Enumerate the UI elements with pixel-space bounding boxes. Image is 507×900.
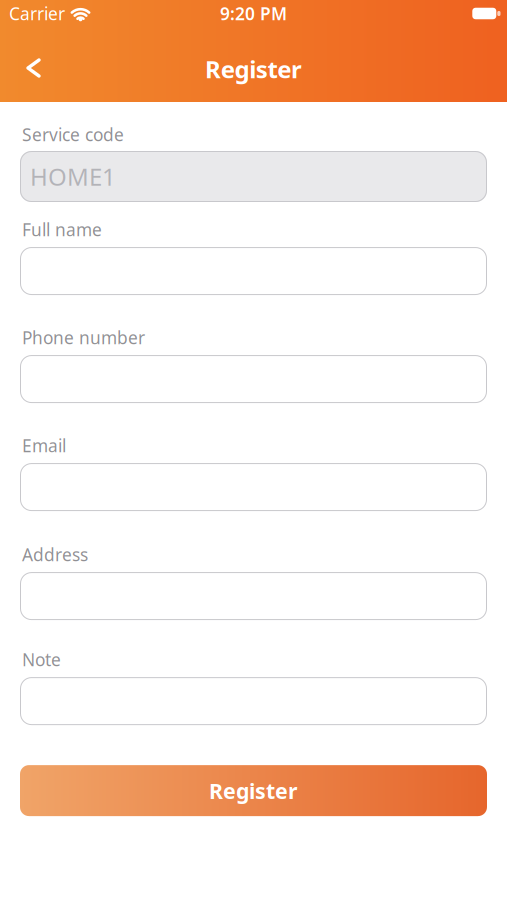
staticText: Email [22,434,66,457]
staticText: Carrier [9,2,65,25]
staticText: Register [205,53,302,85]
staticText: Address [22,543,88,566]
button[interactable]: Back [0,50,53,86]
staticText: Service code [22,123,124,146]
staticText: Full name [22,218,102,241]
staticText: 9:20 PM [220,2,287,25]
staticText: Register [209,776,298,805]
button[interactable]: Register [20,765,487,816]
staticText: HOME1 [30,161,116,192]
staticText: Phone number [22,326,145,349]
staticText: Note [22,648,61,671]
